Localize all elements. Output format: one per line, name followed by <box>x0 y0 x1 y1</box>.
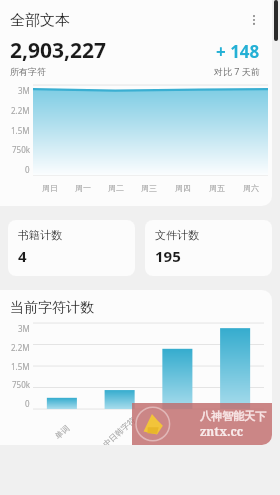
button[interactable]: 文件计数 <box>145 220 272 276</box>
staticText: 750k <box>12 379 30 390</box>
staticText: 全部文本 <box>10 11 70 30</box>
staticText: 周三 <box>141 183 157 193</box>
staticText: 周二 <box>108 183 124 193</box>
button[interactable]: 书籍计数 <box>8 220 135 276</box>
staticText: 4 <box>18 246 27 266</box>
staticText: 周五 <box>209 183 225 193</box>
staticText: 0 <box>25 164 30 175</box>
staticText: 周六 <box>243 183 259 193</box>
staticText: 195 <box>155 246 181 266</box>
staticText: 750k <box>12 144 30 155</box>
staticText: 单词 <box>53 423 71 441</box>
staticText: 周日 <box>42 183 58 193</box>
staticText: 中日韩字符 <box>101 415 137 445</box>
staticText: 八神智能天下 <box>200 409 266 423</box>
staticText: 3M <box>18 323 30 334</box>
staticText: 当前字符计数 <box>10 299 94 317</box>
staticText: 1.5M <box>11 125 30 136</box>
staticText: 周四 <box>175 183 191 193</box>
staticText: 2.2M <box>11 105 30 116</box>
staticText: 对比 7 天前 <box>214 65 260 77</box>
staticText: 周一 <box>75 183 91 193</box>
staticText: 0 <box>25 398 30 409</box>
staticText: zntx.cc <box>200 423 244 439</box>
staticText: 2,903,227 <box>10 36 107 65</box>
staticText: 所有字符 <box>10 66 46 77</box>
staticText: 文件计数 <box>155 228 199 242</box>
staticText: + 148 <box>216 40 260 63</box>
staticText: 3M <box>18 85 30 96</box>
staticText: 2.2M <box>11 342 30 353</box>
staticText: 书籍计数 <box>18 228 62 242</box>
button[interactable]: More options <box>242 8 266 32</box>
staticText: 1.5M <box>11 361 30 372</box>
